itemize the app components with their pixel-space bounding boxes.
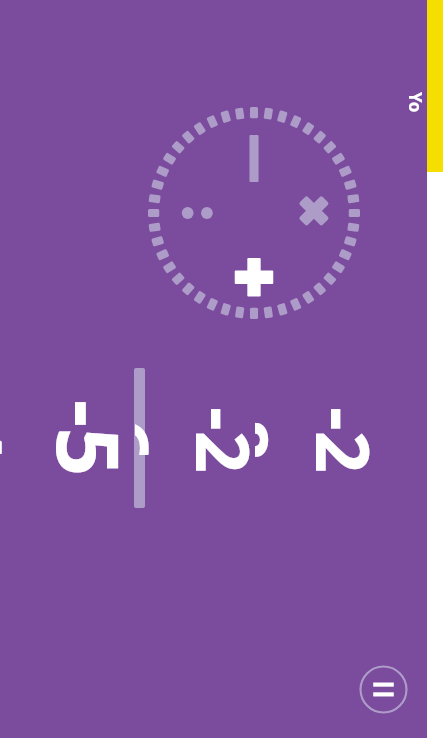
staticText: -28: [255, 393, 395, 487]
button[interactable]: Equals, submit answer: [359, 665, 408, 714]
button[interactable]: Choose operation: [147, 106, 361, 320]
button[interactable]: -54: [10, 358, 128, 518]
staticText: -26: [135, 393, 275, 487]
staticText: -54: [0, 379, 149, 497]
staticText: Your score: 12(: [397, 92, 427, 122]
